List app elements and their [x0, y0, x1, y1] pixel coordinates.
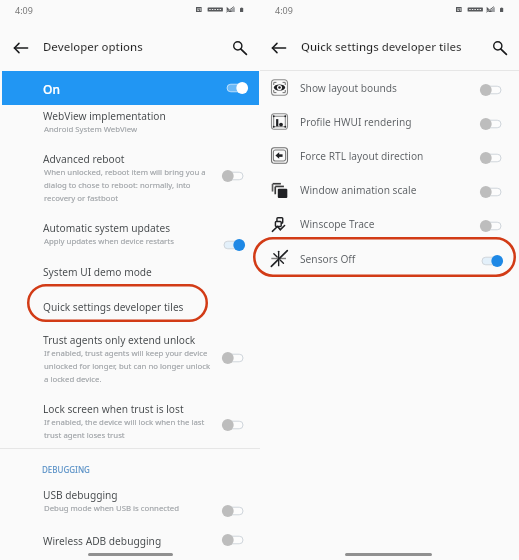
staticText: If enabled, trust agents will keep your … [44, 348, 208, 359]
staticText: System UI demo mode [43, 265, 152, 279]
button[interactable]: Back [267, 36, 291, 60]
staticText: a locked device. [44, 374, 102, 385]
button[interactable]: Search [227, 36, 251, 60]
staticText: Automatic system updates [43, 221, 171, 235]
button[interactable]: Force RTL layout direction [260, 140, 519, 174]
staticText: Force RTL layout direction [300, 149, 424, 163]
staticText: Trust agents only extend unlock [43, 333, 196, 347]
staticText: DEBUGGING [42, 464, 90, 475]
button[interactable]: Search [487, 36, 511, 60]
button[interactable]: System UI demo mode [0, 258, 260, 284]
staticText: WebView implementation [43, 109, 166, 123]
button[interactable]: Sensors Off [260, 243, 519, 277]
staticText: Wireless ADB debugging [43, 534, 162, 548]
staticText: If enabled, the device will lock when th… [44, 417, 205, 428]
staticText: unlocked for longer, but can no longer u… [44, 361, 211, 372]
button[interactable]: WebView implementation [0, 102, 260, 135]
button[interactable]: Back [9, 36, 33, 60]
button[interactable]: Winscope Trace [260, 208, 519, 242]
staticText: Debug mode when USB is connected [44, 503, 180, 514]
staticText: Android System WebView [44, 124, 138, 135]
button[interactable]: Window animation scale [260, 174, 519, 208]
staticText: trust agent loses trust [44, 430, 125, 441]
staticText: Advanced reboot [43, 152, 125, 166]
button[interactable]: Trust agents only extend unlock [0, 326, 260, 385]
button[interactable]: Lock screen when trust is lost [0, 395, 260, 441]
staticText: Profile HWUI rendering [300, 115, 412, 129]
staticText: 4:09 [275, 4, 293, 16]
button[interactable]: On [2, 71, 259, 105]
staticText: Apply updates when device restarts [44, 236, 174, 247]
staticText: USB debugging [43, 488, 118, 502]
staticText: On [43, 81, 60, 97]
button[interactable]: Show layout bounds [260, 72, 519, 106]
staticText: Quick settings developer tiles [301, 39, 462, 55]
staticText: recovery or fastboot [44, 193, 118, 204]
staticText: Show layout bounds [300, 81, 397, 95]
button[interactable]: Automatic system updates [0, 214, 260, 247]
staticText: Lock screen when trust is lost [43, 402, 184, 416]
button[interactable]: Profile HWUI rendering [260, 106, 519, 140]
button[interactable]: USB debugging [0, 481, 260, 514]
staticText: Sensors Off [300, 252, 356, 266]
staticText: Window animation scale [300, 183, 417, 197]
staticText: Winscope Trace [300, 217, 375, 231]
staticText: dialog to chose to reboot: normally, int… [44, 180, 191, 191]
button[interactable]: Wireless ADB debugging [0, 527, 260, 553]
staticText: 4:09 [15, 4, 33, 16]
button[interactable]: Advanced reboot [0, 145, 260, 204]
staticText: Developer options [43, 39, 143, 55]
button[interactable]: Quick settings developer tiles [0, 293, 260, 319]
staticText: When unlocked, reboot item will bring yo… [44, 167, 206, 178]
staticText: Quick settings developer tiles [43, 300, 184, 314]
